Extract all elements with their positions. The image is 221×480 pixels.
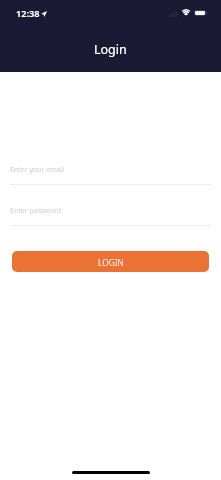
staticText: LOGIN (98, 257, 124, 269)
staticText: 12:38 (16, 7, 40, 20)
button[interactable]: LOGIN (12, 251, 209, 272)
other: Battery full (194, 10, 208, 16)
staticText: Enter your email (10, 165, 65, 175)
other: Cellular signal (169, 11, 178, 17)
other: Wi-Fi (182, 9, 190, 16)
staticText: Login (94, 41, 127, 58)
button[interactable]: Enter password (10, 206, 211, 226)
staticText: Enter password (10, 206, 62, 216)
button[interactable]: Enter your email (10, 165, 211, 185)
other: Location active (41, 11, 47, 17)
